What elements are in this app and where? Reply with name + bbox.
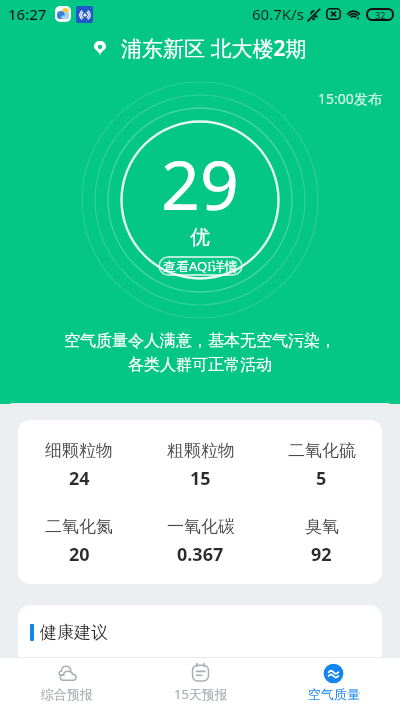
staticText: 健康建议 bbox=[40, 622, 108, 643]
staticText: 15天预报 bbox=[174, 685, 228, 703]
staticText: 5 bbox=[316, 466, 327, 491]
staticText: 0.367 bbox=[177, 542, 224, 567]
staticText: 32 bbox=[375, 9, 386, 21]
staticText: 29 bbox=[161, 137, 239, 230]
staticText: 细颗粒物 bbox=[45, 440, 113, 461]
staticText: 92 bbox=[311, 542, 332, 567]
button[interactable]: 查看AQI详情 bbox=[158, 256, 243, 276]
staticText: 粗颗粒物 bbox=[167, 440, 235, 461]
staticText: 综合预报 bbox=[41, 686, 93, 702]
staticText: 60.7K/s bbox=[252, 4, 304, 24]
button[interactable]: 综合预报 bbox=[0, 660, 134, 709]
staticText: 臭氧 bbox=[305, 516, 339, 537]
staticText: 空气质量令人满意，基本无空气污染， bbox=[64, 331, 336, 351]
button[interactable]: 15天预报 bbox=[134, 659, 267, 710]
staticText: 16:27 bbox=[8, 4, 47, 24]
staticText: 24 bbox=[69, 466, 90, 491]
staticText: 浦东新区 北大楼2期 bbox=[121, 34, 307, 63]
staticText: 15:00发布 bbox=[318, 89, 382, 108]
staticText: 各类人群可正常活动 bbox=[128, 355, 272, 375]
staticText: 查看AQI详情 bbox=[163, 257, 238, 275]
staticText: 空气质量 bbox=[308, 686, 360, 702]
staticText: 优 bbox=[190, 225, 210, 250]
staticText: 20 bbox=[69, 542, 90, 567]
staticText: 一氧化碳 bbox=[167, 516, 235, 537]
button[interactable]: 空气质量 bbox=[267, 660, 400, 709]
staticText: 二氧化硫 bbox=[288, 440, 356, 461]
staticText: 15 bbox=[190, 466, 211, 491]
staticText: 二氧化氮 bbox=[45, 516, 113, 537]
